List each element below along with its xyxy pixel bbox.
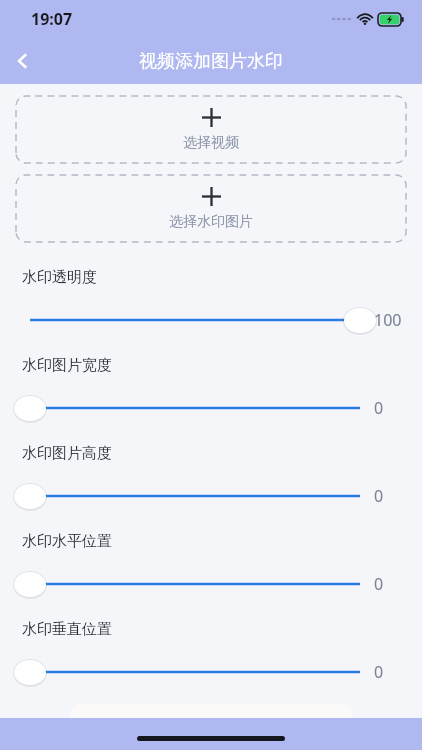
staticText: 水印图片高度: [22, 444, 112, 463]
staticText: 100: [374, 309, 402, 331]
button[interactable]: Back: [0, 38, 46, 84]
staticText: 0: [374, 397, 384, 419]
button[interactable]: 水印水平位置: [0, 567, 374, 601]
button[interactable]: 选择水印图片: [16, 175, 406, 242]
staticText: 水印图片宽度: [22, 356, 112, 375]
staticText: 19:07: [31, 8, 73, 30]
staticText: 水印水平位置: [22, 532, 112, 551]
button[interactable]: 水印图片高度: [0, 479, 374, 513]
button[interactable]: 水印透明度: [0, 303, 374, 337]
staticText: 选择水印图片: [169, 213, 253, 231]
button[interactable]: 水印垂直位置: [0, 655, 374, 689]
button[interactable]: 选择视频: [16, 96, 406, 163]
staticText: 水印垂直位置: [22, 620, 112, 639]
staticText: 0: [374, 573, 384, 595]
staticText: 选择视频: [183, 134, 239, 152]
staticText: 水印透明度: [22, 268, 97, 287]
button[interactable]: 水印图片宽度: [0, 391, 374, 425]
staticText: 0: [374, 485, 384, 507]
staticText: 0: [374, 661, 384, 683]
button[interactable]: [70, 704, 352, 744]
staticText: 视频添加图片水印: [139, 50, 283, 73]
